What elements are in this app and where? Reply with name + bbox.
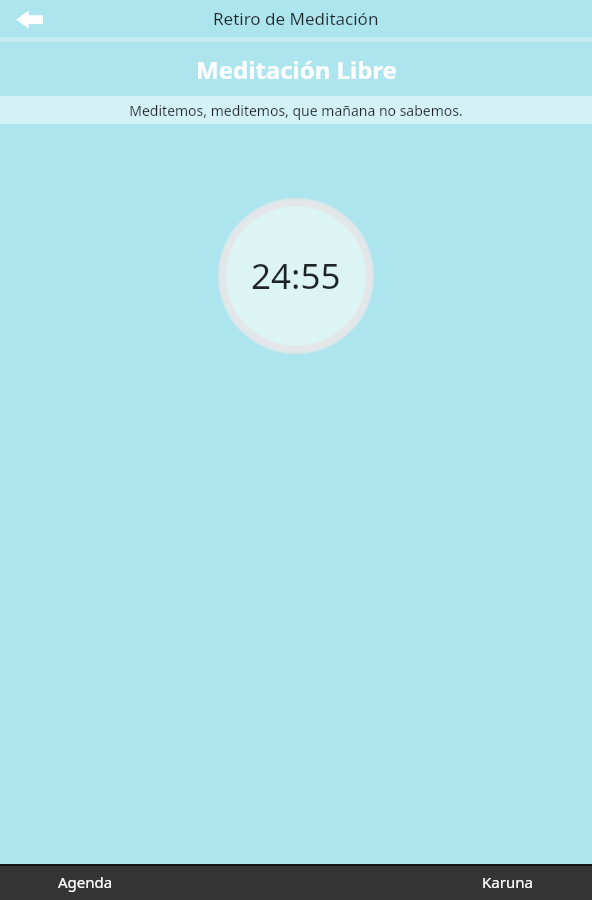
button[interactable]: Back (8, 2, 50, 36)
staticText: Agenda (58, 872, 113, 892)
staticText: Retiro de Meditación (213, 7, 379, 30)
staticText: Meditación Libre (196, 53, 397, 86)
button[interactable]: Karuna (422, 864, 592, 900)
button[interactable]: 24:55 (217, 197, 375, 355)
button[interactable]: Agenda (0, 864, 170, 900)
staticText: Meditemos, meditemos, que mañana no sabe… (129, 101, 463, 120)
staticText: 24:55 (251, 252, 341, 300)
staticText: Karuna (482, 872, 533, 892)
